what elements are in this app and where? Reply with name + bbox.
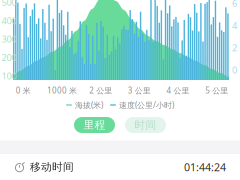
staticText: 200 — [1, 51, 16, 64]
staticText: 2 — [232, 41, 237, 54]
staticText: 6 — [232, 0, 237, 9]
staticText: 里程 — [83, 118, 105, 131]
staticText: 4 公里 — [166, 85, 189, 96]
button[interactable]: 里程 — [74, 117, 115, 133]
staticText: 时间 — [134, 118, 156, 131]
staticText: 100 — [1, 70, 16, 82]
staticText: 0 — [232, 64, 237, 76]
staticText: 300 — [1, 33, 16, 45]
staticText: 400 — [1, 14, 16, 27]
staticText: 移动时间 — [30, 160, 74, 173]
staticText: 海拔(米) — [75, 100, 103, 110]
staticText: 速度(公里/小时) — [119, 100, 174, 110]
staticText: 500 — [1, 0, 16, 8]
button[interactable]: 时间 — [125, 117, 166, 133]
staticText: 01:44:24 — [184, 160, 226, 174]
staticText: 0 米 — [16, 85, 31, 96]
staticText: 3 公里 — [128, 85, 151, 96]
staticText: 2 公里 — [89, 85, 112, 96]
staticText: 1000 米 — [47, 85, 77, 96]
staticText: 4 — [232, 19, 237, 32]
staticText: 5 公里 — [205, 85, 228, 96]
